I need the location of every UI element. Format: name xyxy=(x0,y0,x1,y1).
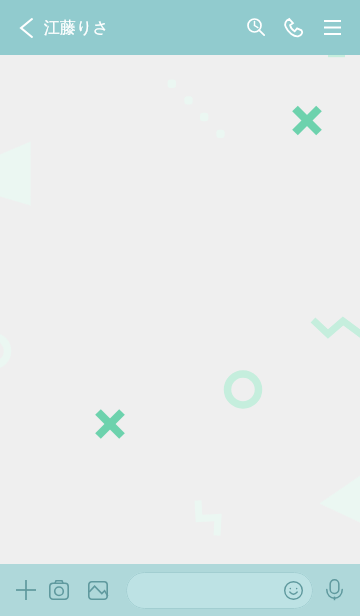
button[interactable]: Emoji xyxy=(126,572,313,609)
button[interactable]: Back xyxy=(6,0,46,55)
button[interactable]: Emoji xyxy=(284,581,303,600)
button[interactable]: Add xyxy=(8,572,44,608)
button[interactable]: Search xyxy=(238,0,275,55)
staticText: 江藤りさ xyxy=(44,18,109,38)
button[interactable]: Gallery xyxy=(80,572,116,608)
button[interactable]: Voice message xyxy=(316,572,352,608)
button[interactable]: Call xyxy=(275,0,312,55)
button[interactable]: Menu xyxy=(313,0,351,55)
button[interactable]: Camera xyxy=(41,572,77,608)
